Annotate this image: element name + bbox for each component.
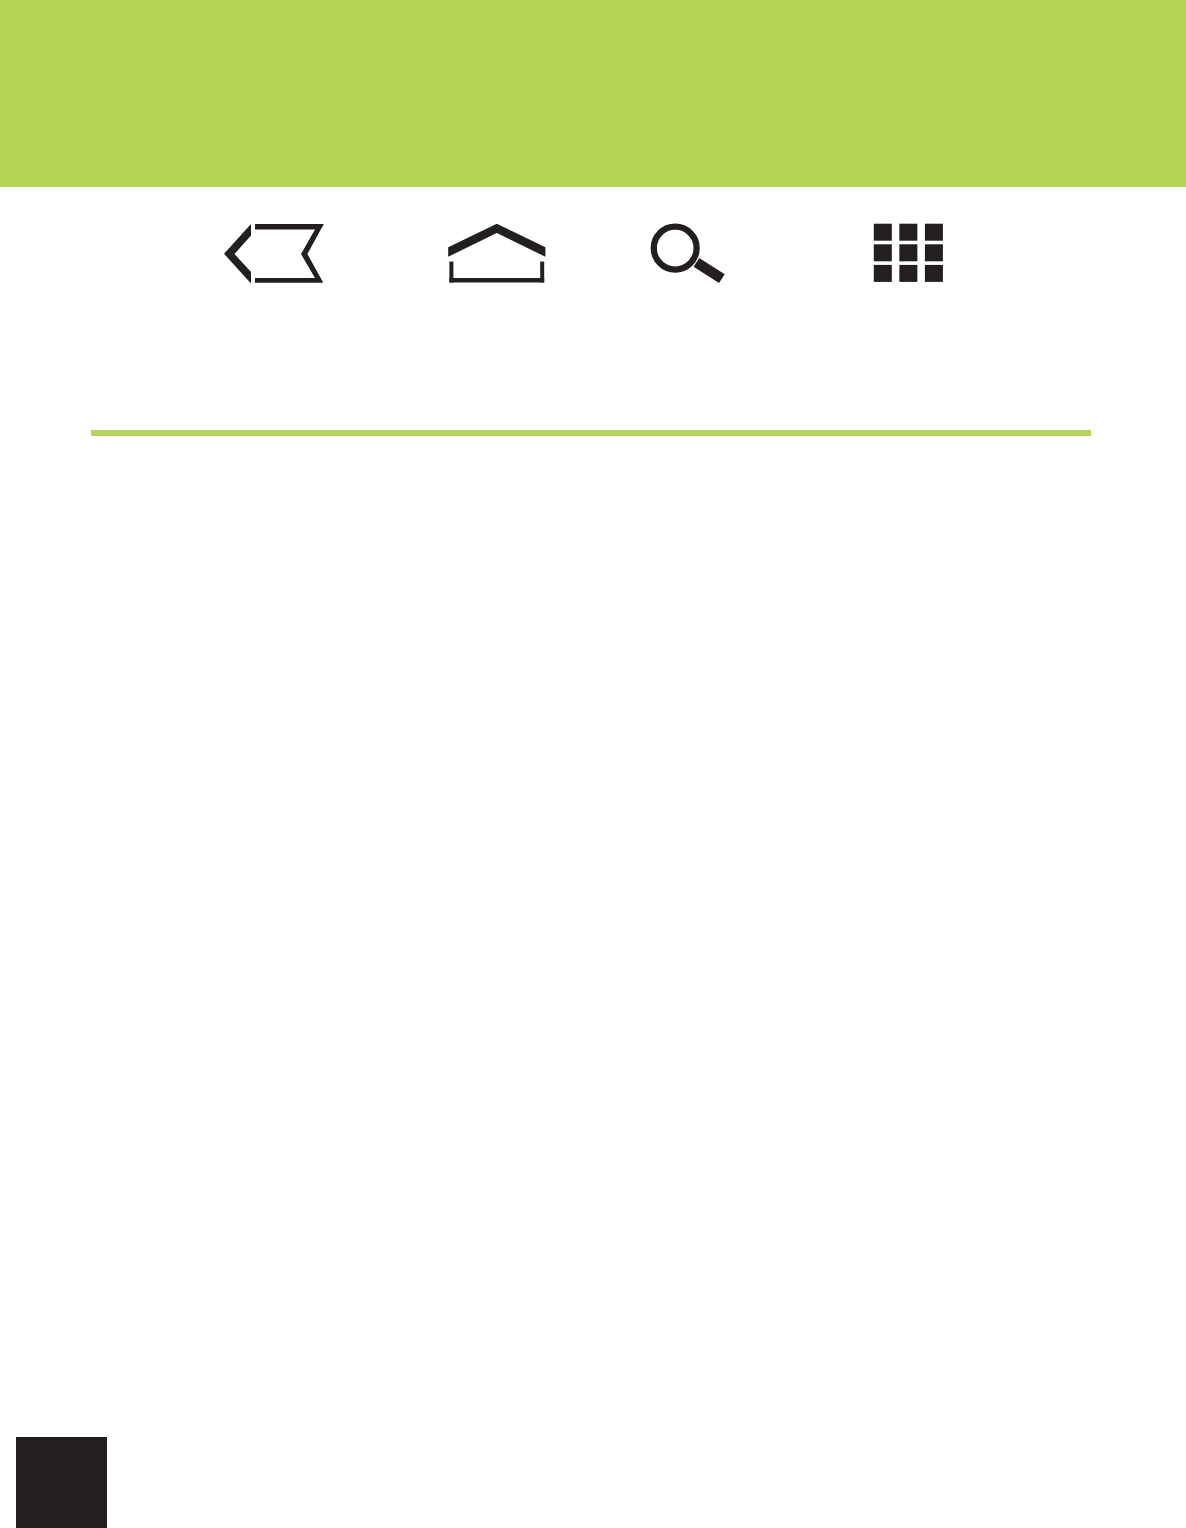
button[interactable]: Apps (873, 223, 944, 283)
button[interactable]: Home (448, 223, 546, 283)
button[interactable]: Back (224, 223, 324, 284)
button[interactable]: Search (648, 221, 728, 285)
